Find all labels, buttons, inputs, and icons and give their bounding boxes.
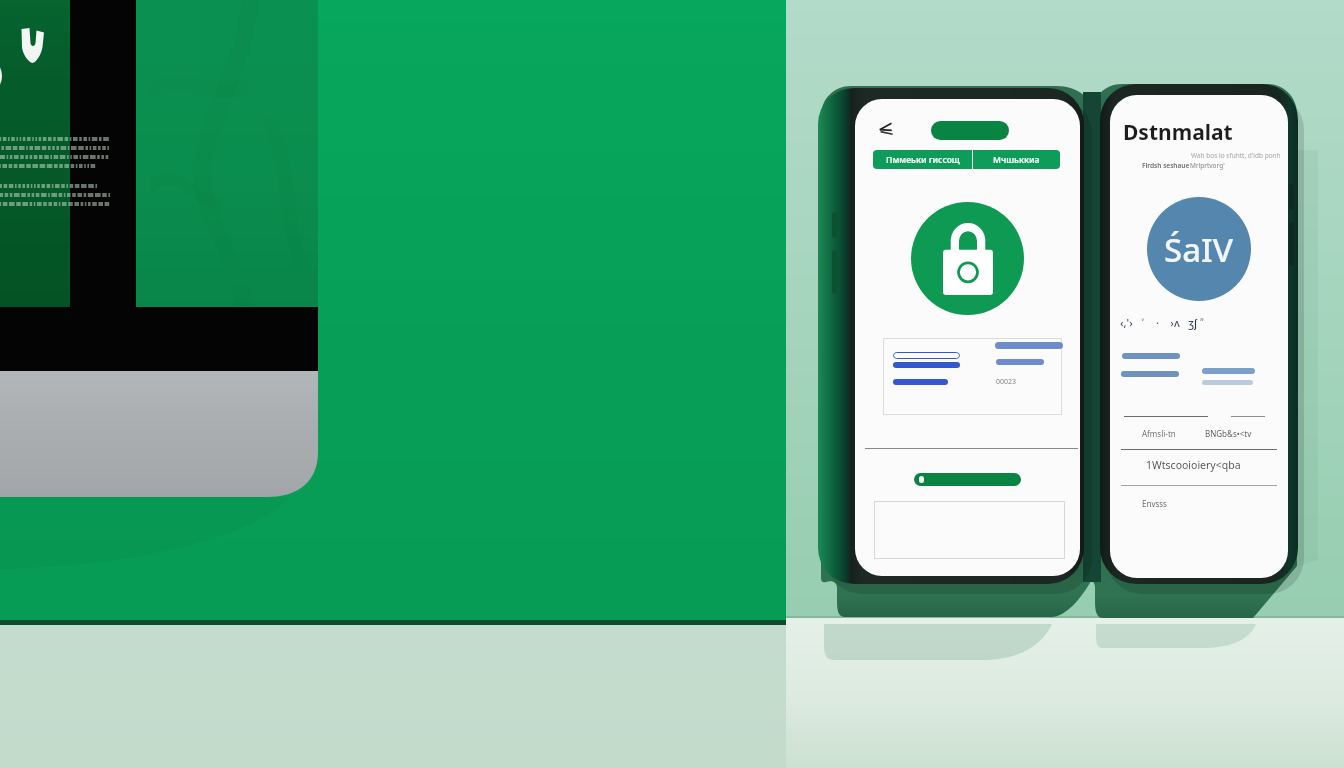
button[interactable] [914, 473, 1021, 486]
staticText: Envsss [1142, 498, 1167, 509]
staticText: Mrlprtvorg' [1190, 161, 1225, 170]
button[interactable] [931, 121, 1009, 140]
staticText: ‹,'› ˅ · ›ʌ ʒʃ ʾʾ [1120, 315, 1204, 330]
button[interactable]: Back [871, 115, 899, 143]
button[interactable]: Мчшьккиа [973, 150, 1060, 169]
button[interactable]: Пммеьки гиссощ [873, 150, 972, 169]
staticText: Afmsli-tn [1142, 428, 1176, 439]
staticText: 00023 [996, 377, 1017, 387]
staticText: Dstnmalat [1123, 118, 1233, 147]
staticText: 1Wtscooioiery<qba [1146, 458, 1241, 472]
staticText: Пммеьки гиссощ [886, 154, 960, 166]
staticText: ŚaIV [1164, 227, 1234, 272]
staticText: Wah bos lo sfuhtt, d'idb ponh [1191, 151, 1281, 160]
staticText: BNGb&s•<tv [1205, 428, 1252, 439]
staticText: Мчшьккиа [993, 154, 1040, 166]
staticText: Flrdsh seshaue [1142, 161, 1190, 170]
